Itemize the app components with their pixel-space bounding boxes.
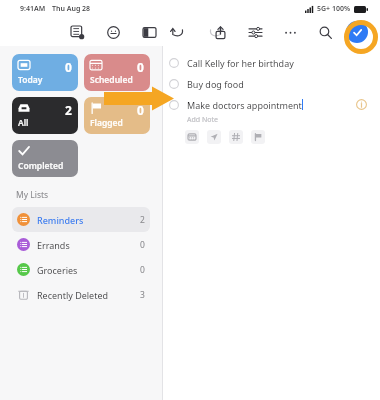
staticText: All [18, 117, 29, 129]
button[interactable]: 0 [84, 54, 150, 91]
button[interactable]: Add location [207, 130, 221, 144]
button[interactable]: Completed [12, 140, 78, 177]
button[interactable]: 0 [84, 97, 150, 134]
staticText: 5G+ 100% [317, 4, 351, 14]
button[interactable]: Undo [168, 23, 186, 41]
staticText: Errands [37, 239, 140, 251]
button[interactable]: More [281, 23, 299, 41]
button[interactable]: 2 [12, 97, 78, 134]
button[interactable]: Recently Deleted [12, 282, 150, 307]
button[interactable]: Done [346, 21, 368, 43]
staticText: Call Kelly for her birthday [187, 57, 294, 69]
staticText: Make doctors appointment [187, 99, 302, 111]
staticText: Recently Deleted [37, 289, 140, 301]
button[interactable]: Add date [185, 130, 199, 144]
staticText: My Lists [16, 189, 49, 201]
button[interactable]: Make doctors appointment [163, 94, 380, 115]
staticText: Reminders [37, 214, 140, 226]
button[interactable]: Call Kelly for her birthday [163, 52, 380, 73]
staticText: 2 [65, 102, 72, 118]
staticText: Completed [18, 160, 64, 172]
button[interactable]: Filter [246, 23, 264, 41]
button[interactable]: Errands [12, 232, 150, 257]
staticText: 0 [65, 59, 72, 75]
staticText: Buy dog food [187, 78, 244, 90]
button[interactable]: Search [316, 23, 334, 41]
staticText: 0 [137, 59, 144, 75]
staticText: 9:41AM [20, 4, 46, 14]
button[interactable]: Reminders [12, 207, 150, 232]
staticText: 0 [137, 102, 144, 118]
staticText: Scheduled [90, 74, 133, 86]
staticText: Thu Aug 28 [52, 4, 91, 14]
staticText: 3 [140, 289, 145, 301]
staticText: Today [18, 74, 43, 86]
button[interactable]: Share [211, 23, 229, 41]
staticText: 0 [140, 264, 145, 276]
staticText: 0 [140, 239, 145, 251]
button[interactable]: Chat [104, 23, 122, 41]
button[interactable]: Sidebar [140, 23, 158, 41]
staticText: Add Note [187, 115, 218, 125]
button[interactable]: Details [355, 98, 368, 111]
button[interactable]: New reminder [68, 23, 86, 41]
button[interactable]: Add tag [229, 130, 243, 144]
button[interactable]: Buy dog food [163, 73, 380, 94]
staticText: Flagged [90, 117, 123, 129]
button[interactable]: Flag [251, 130, 265, 144]
staticText: Groceries [37, 264, 140, 276]
staticText: 2 [140, 214, 145, 226]
button[interactable]: Groceries [12, 257, 150, 282]
button[interactable]: Redo [206, 23, 224, 41]
button[interactable]: 0 [12, 54, 78, 91]
